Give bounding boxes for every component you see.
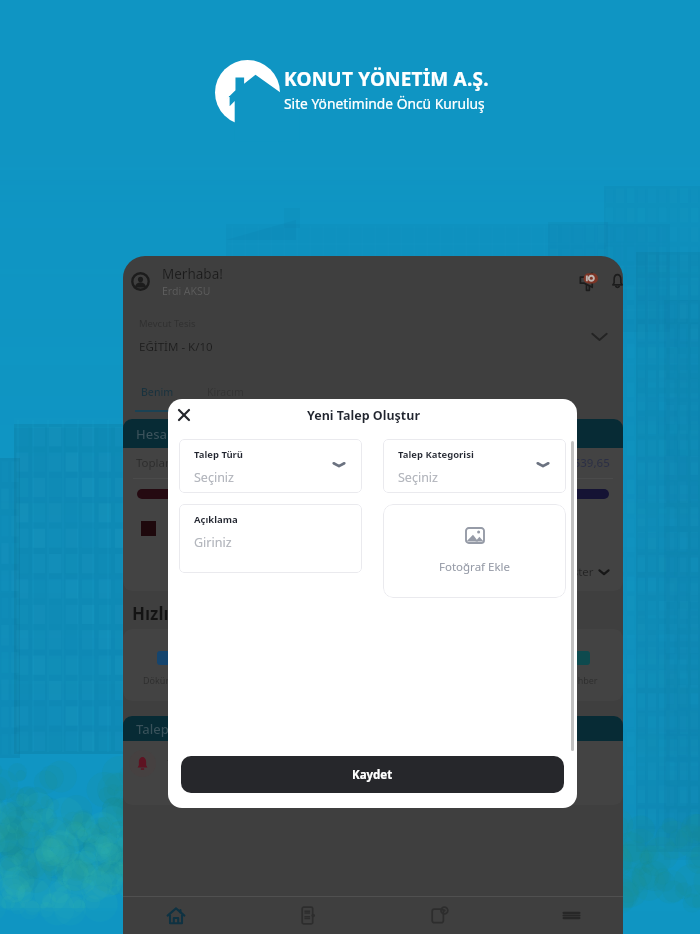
button[interactable]: Talepler [279,897,337,934]
button[interactable]: Menü [542,897,600,934]
button[interactable]: Kapat [170,401,198,429]
button[interactable]: Bildirimler [603,267,623,295]
staticText: Toplam Borç [136,455,204,471]
staticText: Taleplerim [136,720,202,738]
staticText: Kaydet [352,767,393,783]
staticText: 4.539,65 [564,455,610,471]
staticText: Fotoğraf Ekle [439,559,511,575]
staticText: Hesap Özeti [136,425,211,443]
staticText: Açıklama [194,513,238,526]
button[interactable]: Ödemeler [410,897,468,934]
staticText: Seçiniz [398,469,438,486]
staticText: KONUT YÖNETİM A.Ş. [284,66,489,92]
button[interactable]: Talep Türü [179,439,362,493]
staticText: Site Yönetiminde Öncü Kuruluş [284,94,485,113]
staticText: Yeni Talep Oluştur [307,407,420,424]
button[interactable]: Açıklama [179,504,362,573]
staticText: Talep Kategorisi [398,448,474,461]
staticText: Erdi AKSU [162,284,211,298]
staticText: Rehber [567,674,598,686]
button[interactable]: Döküman [123,629,204,701]
staticText: Mevcut Tesis [139,317,196,330]
button[interactable] [377,489,609,499]
staticText: Merhaba! [162,265,223,283]
button[interactable]: Benim [128,385,186,412]
button[interactable]: Talep Kategorisi [383,439,566,493]
staticText: Kiracım [207,385,244,399]
button[interactable]: Ana Sayfa [147,897,205,934]
staticText: EĞİTİM - K/10 [139,339,213,355]
staticText: Döküman [143,674,185,686]
staticText: Detay Göster [523,564,594,580]
button[interactable]: Duyurular [575,267,603,295]
button[interactable]: Kaydet [181,756,564,793]
button[interactable]: Fotoğraf Ekle [383,504,566,598]
staticText: Seçiniz [194,469,234,486]
button[interactable]: Rehber [541,629,623,701]
staticText: Talep Türü [194,448,243,461]
staticText: Talebiniz bulunmamaktadır [167,756,308,771]
staticText: Giriniz [194,534,232,551]
button[interactable] [137,489,368,499]
staticText: Benim [141,385,174,399]
staticText: Hızlı İşlemler [132,602,243,625]
